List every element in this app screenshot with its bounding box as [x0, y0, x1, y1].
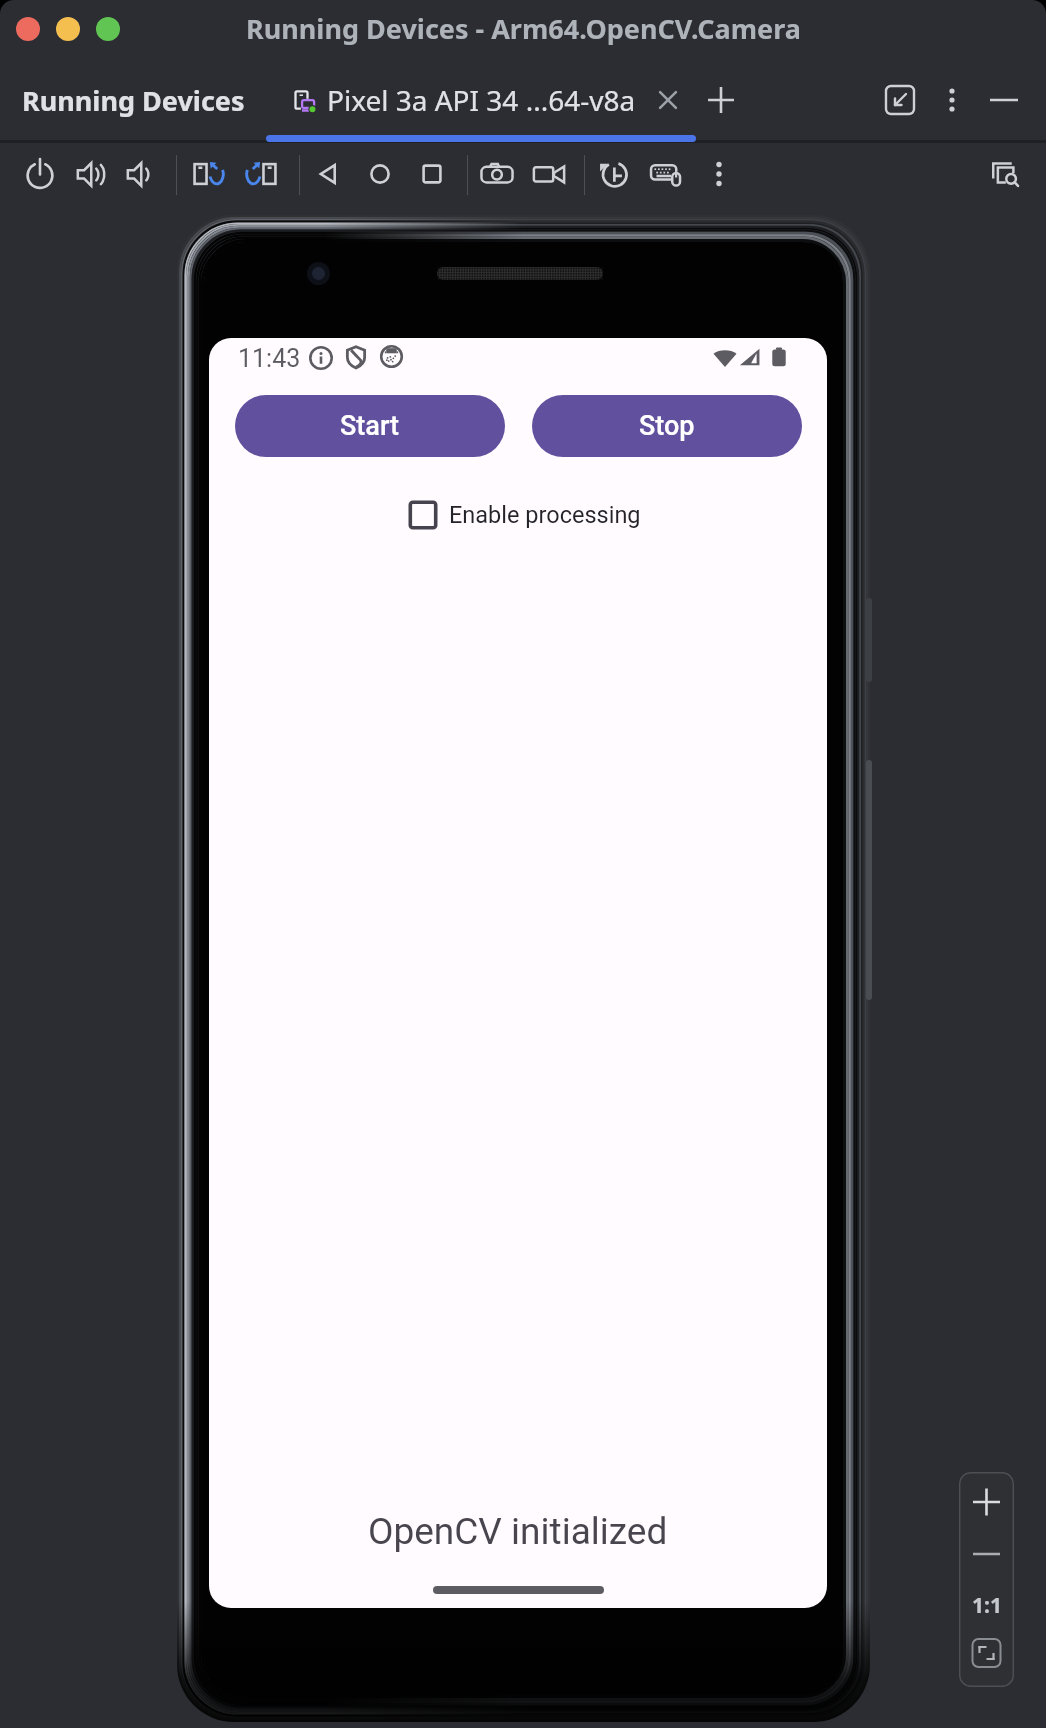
button[interactable]: Display mode: [984, 153, 1026, 195]
button[interactable]: Rotate right: [241, 153, 283, 195]
staticText: 1:1: [972, 1591, 1002, 1620]
button[interactable]: Volume up: [69, 153, 111, 195]
button[interactable]: Zoom in: [959, 1477, 1014, 1527]
button[interactable]: Start: [235, 395, 505, 457]
button[interactable]: Hardware input: [646, 153, 688, 195]
button[interactable]: Minimize: [56, 17, 80, 41]
button[interactable]: Back up: [594, 153, 636, 195]
button[interactable]: Minimize window: [986, 82, 1022, 118]
button[interactable]: Home: [359, 153, 401, 195]
button[interactable]: Power: [19, 153, 61, 195]
staticText: Enable processing: [449, 501, 641, 529]
staticText: Start: [340, 410, 400, 442]
button[interactable]: 1:1: [959, 1580, 1014, 1630]
button[interactable]: New tab: [703, 82, 739, 118]
button[interactable]: Close: [16, 17, 40, 41]
button[interactable]: Volume down: [119, 153, 161, 195]
button[interactable]: Rotate left: [187, 153, 229, 195]
staticText: Running Devices - Arm64.OpenCV.Camera: [246, 10, 801, 47]
button[interactable]: Record screen: [528, 153, 570, 195]
button[interactable]: More options: [936, 84, 968, 116]
button[interactable]: Take screenshot: [476, 153, 518, 195]
button[interactable]: Back: [307, 153, 349, 195]
button[interactable]: Pixel 3a API 34 ...64-v8a: [291, 81, 636, 119]
button[interactable]: Stop: [532, 395, 802, 457]
button[interactable]: More: [698, 153, 740, 195]
button[interactable]: Close tab: [650, 82, 686, 118]
staticText: Pixel 3a API 34 ...64-v8a: [327, 81, 636, 119]
button[interactable]: Maximize: [96, 17, 120, 41]
staticText: Stop: [639, 410, 695, 442]
button[interactable]: Enable processing: [406, 497, 641, 533]
button[interactable]: Zoom out: [959, 1529, 1014, 1579]
button[interactable]: Fit to screen: [959, 1628, 1014, 1678]
staticText: OpenCV initialized: [368, 1510, 668, 1553]
staticText: Running Devices: [22, 82, 245, 119]
button[interactable]: Dock: [884, 84, 916, 116]
staticText: 11:43: [238, 344, 301, 373]
button[interactable]: Overview: [411, 153, 453, 195]
